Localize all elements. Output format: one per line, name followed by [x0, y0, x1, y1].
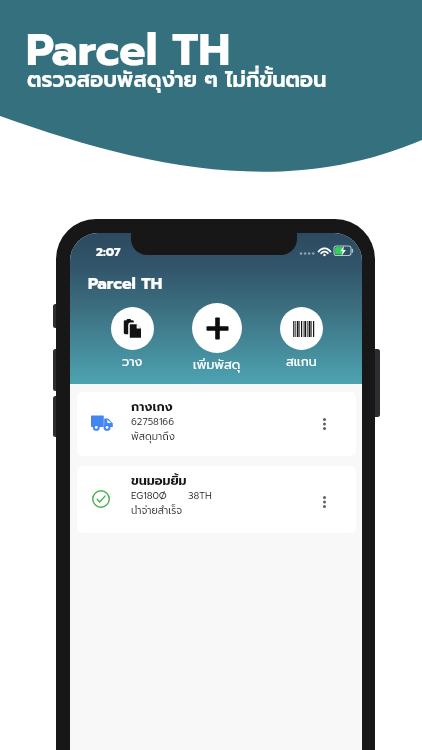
staticText: สแกน: [286, 352, 317, 371]
staticText: ตรวจสอบพัสดุง่าย ๆ ไม่กี่ขั้นตอน: [27, 64, 327, 96]
button[interactable]: วาง: [102, 307, 162, 371]
staticText: เพิ่มพัสดุ: [193, 355, 241, 374]
button[interactable]: กางเกง: [77, 392, 356, 456]
staticText: 62758166: [131, 415, 175, 430]
staticText: Parcel TH: [26, 17, 230, 84]
button[interactable]: เพิ่มพัสดุ: [187, 303, 247, 374]
staticText: กางเกง: [131, 397, 173, 416]
staticText: ขนมอมยิ้ม: [131, 471, 187, 490]
staticText: วาง: [122, 352, 143, 371]
staticText: EG180Ø 38TH: [131, 489, 212, 504]
button[interactable]: ขนมอมยิ้ม: [77, 466, 356, 533]
button[interactable]: สแกน: [271, 307, 331, 371]
staticText: 2:07: [96, 243, 121, 261]
button[interactable]: More options: [317, 414, 331, 434]
button[interactable]: More options: [317, 492, 331, 512]
staticText: Parcel TH: [88, 272, 163, 296]
staticText: พัสดุมาถึง: [131, 429, 175, 444]
staticText: นำจ่ายสำเร็จ: [131, 503, 183, 518]
